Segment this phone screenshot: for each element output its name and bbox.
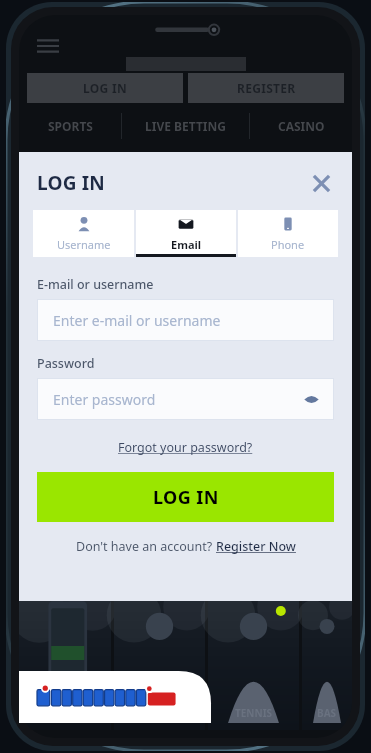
staticText: Email — [171, 237, 202, 252]
button[interactable]: REGISTER — [188, 73, 344, 103]
staticText: Username — [57, 237, 111, 252]
button[interactable]: SPORTS — [19, 113, 121, 139]
staticText: LOG IN — [153, 485, 219, 510]
button[interactable]: Menu — [33, 31, 63, 61]
staticText: Enter e-mail or username — [53, 311, 221, 330]
button[interactable]: LIVE BETTING — [122, 113, 249, 139]
button[interactable]: Enter password — [37, 378, 334, 420]
button[interactable]: TENNIS — [208, 590, 299, 730]
button[interactable]: Phone — [238, 210, 338, 257]
staticText: Phone — [271, 237, 305, 252]
staticText: SPORTS — [48, 118, 93, 134]
staticText: REGISTER — [237, 80, 296, 96]
button[interactable]: BAS — [302, 590, 352, 730]
staticText: LOG IN — [83, 80, 127, 96]
button[interactable] — [19, 590, 111, 730]
staticText: LIVE BETTING — [145, 118, 226, 134]
staticText: Forgot your password? — [118, 439, 253, 456]
staticText: TENNIS — [235, 706, 273, 720]
button[interactable]: Enter e-mail or username — [37, 299, 334, 341]
staticText: Don't have an account? — [76, 538, 216, 555]
button[interactable]: Username — [33, 210, 134, 257]
staticText: CASINO — [278, 118, 325, 134]
staticText: E-mail or username — [37, 276, 154, 293]
button[interactable]: LOG IN — [37, 472, 334, 522]
button[interactable]: Register Now — [216, 538, 296, 555]
button[interactable]: CASINO — [250, 113, 352, 139]
button[interactable] — [114, 590, 205, 730]
staticText: Password — [37, 355, 95, 372]
button[interactable]: Forgot your password? — [112, 436, 259, 459]
button[interactable]: Email — [136, 210, 236, 257]
button[interactable]: Show password — [298, 386, 324, 412]
staticText: BAS — [317, 706, 337, 720]
staticText: Register Now — [216, 538, 296, 555]
staticText: Enter password — [53, 390, 156, 409]
button[interactable]: LOG IN — [27, 73, 183, 103]
button[interactable]: Close — [304, 166, 338, 200]
staticText: LOG IN — [37, 170, 106, 196]
